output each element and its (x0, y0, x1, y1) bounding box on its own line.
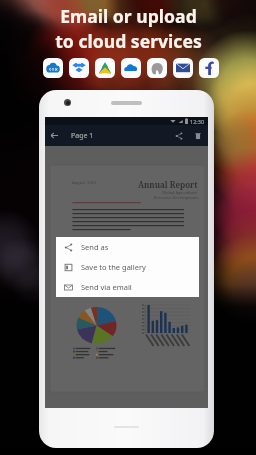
staticText: Save to the gallery (81, 262, 146, 272)
staticText: Page 1 (71, 131, 94, 141)
staticText: 12:30 (190, 118, 205, 125)
button[interactable]: Send as (56, 237, 199, 257)
button[interactable]: Email (173, 58, 193, 78)
button[interactable]: Delete (188, 126, 207, 145)
button[interactable]: Back (45, 126, 64, 145)
button[interactable]: Facebook (199, 58, 219, 78)
staticText: August, 2015 (72, 180, 97, 185)
staticText: Global Agriculture (162, 190, 198, 195)
button[interactable]: Box (43, 58, 63, 78)
staticText: Annual Report (138, 179, 198, 190)
staticText: to cloud services (55, 29, 202, 53)
button[interactable]: Save to the gallery (56, 257, 199, 277)
button[interactable]: Dropbox (69, 58, 89, 78)
button[interactable]: Send via email (56, 277, 199, 297)
staticText: Resource Development (154, 195, 198, 200)
staticText: Email or upload (60, 4, 197, 28)
button[interactable]: Evernote (147, 58, 167, 78)
staticText: Send via email (81, 282, 132, 292)
button[interactable]: Google Drive (95, 58, 115, 78)
button[interactable]: OneDrive (121, 58, 141, 78)
staticText: Send as (81, 242, 109, 252)
button[interactable]: Share (169, 126, 188, 145)
